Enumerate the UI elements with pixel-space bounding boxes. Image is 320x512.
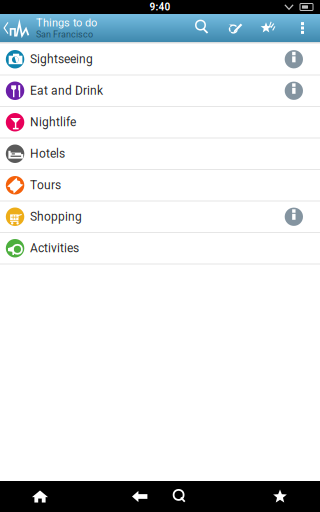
button[interactable]: More options <box>285 14 320 42</box>
button[interactable]: Favorites <box>240 481 320 512</box>
button[interactable]: Nightlife <box>0 107 320 138</box>
staticText: Things to do <box>36 16 97 29</box>
button[interactable]: Sightseeing <box>0 44 320 75</box>
staticText: Shopping <box>30 210 82 224</box>
staticText: Eat and Drink <box>30 84 103 98</box>
staticText: Activities <box>30 241 79 255</box>
button[interactable]: Search <box>160 481 200 512</box>
button[interactable]: Back <box>120 481 160 512</box>
staticText: Hotels <box>30 147 65 161</box>
staticText: 9:40 <box>149 1 170 13</box>
button[interactable]: Activities <box>0 233 320 264</box>
button[interactable]: Home <box>0 481 80 512</box>
button[interactable]: Plan a trip <box>220 14 252 42</box>
button[interactable]: Eat and Drink <box>0 75 320 107</box>
staticText: Tours <box>30 178 61 192</box>
button[interactable]: Shopping <box>0 201 320 233</box>
staticText: Sightseeing <box>30 52 93 66</box>
staticText: Nightlife <box>30 115 76 129</box>
button[interactable]: Back <box>0 14 33 42</box>
button[interactable]: Search <box>186 14 220 42</box>
staticText: San Francisco <box>36 29 93 40</box>
button[interactable]: Tours <box>0 170 320 201</box>
button[interactable]: Favorites <box>252 14 285 42</box>
button[interactable]: Hotels <box>0 138 320 170</box>
